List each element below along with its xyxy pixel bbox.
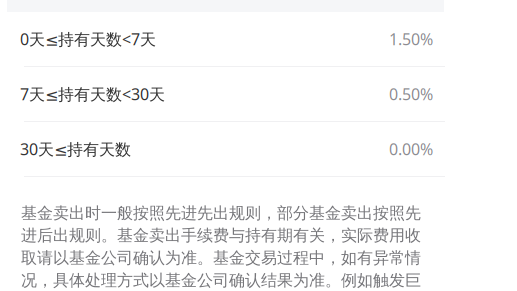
button[interactable]: 0天≤持有天数<7天: [0, 12, 517, 66]
staticText: 基金卖出时一般按照先进先出规则，部分基金卖出按照先进后出规则。基金卖出手续费与持…: [21, 203, 421, 291]
staticText: 30天≤持有天数: [20, 138, 131, 160]
staticText: 1.50%: [389, 28, 433, 50]
staticText: 0.00%: [389, 138, 433, 160]
staticText: 0.50%: [389, 83, 433, 105]
staticText: 7天≤持有天数<30天: [20, 83, 165, 105]
staticText: 0天≤持有天数<7天: [20, 28, 156, 50]
button[interactable]: 30天≤持有天数: [0, 122, 517, 176]
button[interactable]: 7天≤持有天数<30天: [0, 67, 517, 121]
